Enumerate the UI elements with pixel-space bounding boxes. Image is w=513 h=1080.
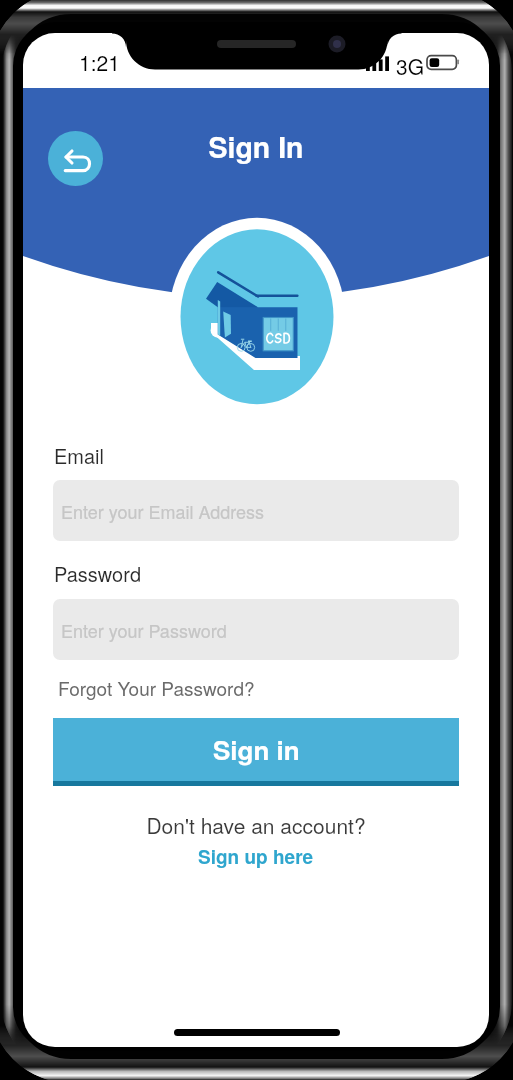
- staticText: Sign up here: [198, 843, 314, 870]
- staticText: Forgot Your Password?: [58, 674, 255, 701]
- button[interactable]: Sign in: [53, 718, 459, 786]
- staticText: Email: [54, 441, 104, 470]
- staticText: 1:21: [79, 47, 120, 77]
- staticText: Don't have an account?: [23, 810, 489, 840]
- staticText: Sign in: [213, 731, 300, 768]
- staticText: Sign In: [23, 126, 489, 167]
- button[interactable]: Enter your Email Address: [53, 480, 459, 541]
- staticText: Password: [54, 559, 141, 588]
- staticText: 3G: [396, 51, 425, 81]
- button[interactable]: Forgot Your Password?: [58, 674, 255, 701]
- staticText: Enter your Email Address: [61, 498, 265, 524]
- staticText: Enter your Password: [61, 617, 227, 643]
- button[interactable]: Sign up here: [23, 843, 489, 870]
- button[interactable]: Back: [48, 131, 103, 186]
- button[interactable]: Enter your Password: [53, 599, 459, 660]
